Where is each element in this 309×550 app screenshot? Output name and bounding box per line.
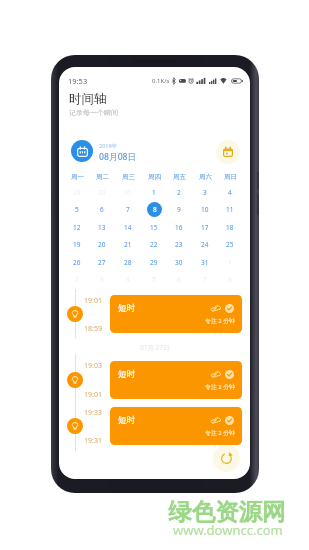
button[interactable]: 22	[142, 236, 166, 252]
staticText: 8	[153, 205, 157, 214]
button[interactable]: Moment	[67, 418, 83, 434]
button[interactable]: 10	[193, 201, 217, 217]
button[interactable]: 31	[193, 254, 217, 270]
staticText: 记录每一个瞬间	[69, 108, 118, 117]
button[interactable]: 17	[193, 219, 217, 235]
staticText: www.downcc.com	[173, 521, 283, 539]
staticText: 5	[75, 205, 79, 214]
button[interactable]: Moment	[67, 306, 83, 322]
button[interactable]: 12	[65, 219, 89, 235]
staticText: 21	[124, 240, 132, 249]
button[interactable]: 14	[116, 219, 140, 235]
staticText: 短时	[118, 415, 136, 426]
staticText: 29	[150, 258, 158, 267]
button[interactable]: 15	[142, 219, 166, 235]
button[interactable]: 29	[142, 254, 166, 270]
staticText: 1	[228, 258, 232, 267]
button[interactable]: 19	[65, 236, 89, 252]
staticText: 4	[126, 275, 130, 284]
staticText: 7	[203, 275, 207, 284]
staticText: 3	[100, 275, 104, 284]
staticText: 20	[98, 240, 106, 249]
staticText: 9	[177, 205, 181, 214]
button[interactable]: 27	[90, 254, 114, 270]
staticText: 12	[73, 223, 81, 232]
staticText: 3	[203, 188, 207, 197]
staticText: 17	[201, 223, 209, 232]
staticText: 2019年	[99, 142, 118, 150]
button[interactable]: 6	[90, 201, 114, 217]
staticText: 29	[73, 188, 81, 197]
staticText: 专注 2 分钟	[205, 317, 235, 325]
staticText: 23	[175, 240, 183, 249]
button[interactable]: 28	[116, 254, 140, 270]
staticText: 周五	[173, 173, 186, 181]
button[interactable]: 16	[167, 219, 191, 235]
button[interactable]: 2	[167, 184, 191, 200]
staticText: 07月 27日	[140, 343, 170, 352]
staticText: 22	[150, 240, 158, 249]
staticText: 19:53	[68, 76, 88, 86]
button[interactable]: 30	[167, 254, 191, 270]
button[interactable]: Refresh	[213, 445, 240, 472]
button[interactable]: 4	[218, 184, 242, 200]
staticText: 30	[98, 188, 106, 197]
staticText: 08月08日	[99, 151, 137, 163]
button[interactable]: 7	[116, 201, 140, 217]
button[interactable]	[71, 140, 93, 162]
button[interactable]: 短时	[110, 407, 242, 445]
button[interactable]: 9	[167, 201, 191, 217]
staticText: 5	[152, 275, 156, 284]
staticText: 4	[228, 188, 232, 197]
button[interactable]: 短时	[110, 361, 242, 399]
button[interactable]: Pick date	[216, 140, 240, 164]
button[interactable]: 26	[65, 254, 89, 270]
button[interactable]: 23	[167, 236, 191, 252]
staticText: 13	[98, 223, 106, 232]
staticText: 短时	[118, 369, 136, 380]
staticText: 19:33	[84, 408, 102, 418]
staticText: 专注 2 分钟	[205, 383, 235, 391]
staticText: 24	[201, 240, 209, 249]
button[interactable]: 8	[147, 202, 162, 217]
button[interactable]: 11	[218, 201, 242, 217]
staticText: 2	[177, 188, 181, 197]
staticText: 周二	[96, 173, 109, 181]
button[interactable]: 18	[218, 219, 242, 235]
staticText: 6	[100, 205, 104, 214]
staticText: 25	[226, 240, 234, 249]
staticText: 8	[228, 275, 232, 284]
staticText: 28	[124, 258, 132, 267]
staticText: 10	[201, 205, 209, 214]
staticText: 时间轴	[69, 91, 107, 107]
button[interactable]: 5	[65, 201, 89, 217]
button[interactable]: 25	[218, 236, 242, 252]
staticText: 周日	[224, 173, 237, 181]
staticText: 31	[124, 188, 132, 197]
button[interactable]: 3	[193, 184, 217, 200]
staticText: 2	[75, 275, 79, 284]
button[interactable]: Moment	[67, 372, 83, 388]
staticText: 7	[126, 205, 130, 214]
button[interactable]: 21	[116, 236, 140, 252]
button[interactable]: 20	[90, 236, 114, 252]
staticText: 短时	[118, 303, 136, 314]
button[interactable]: 24	[193, 236, 217, 252]
button[interactable]: 13	[90, 219, 114, 235]
button[interactable]: 短时	[110, 295, 242, 333]
staticText: 19:31	[84, 436, 102, 446]
staticText: 1	[152, 188, 156, 197]
button[interactable]: 1	[142, 184, 166, 200]
staticText: 0.1K/s	[152, 77, 170, 85]
